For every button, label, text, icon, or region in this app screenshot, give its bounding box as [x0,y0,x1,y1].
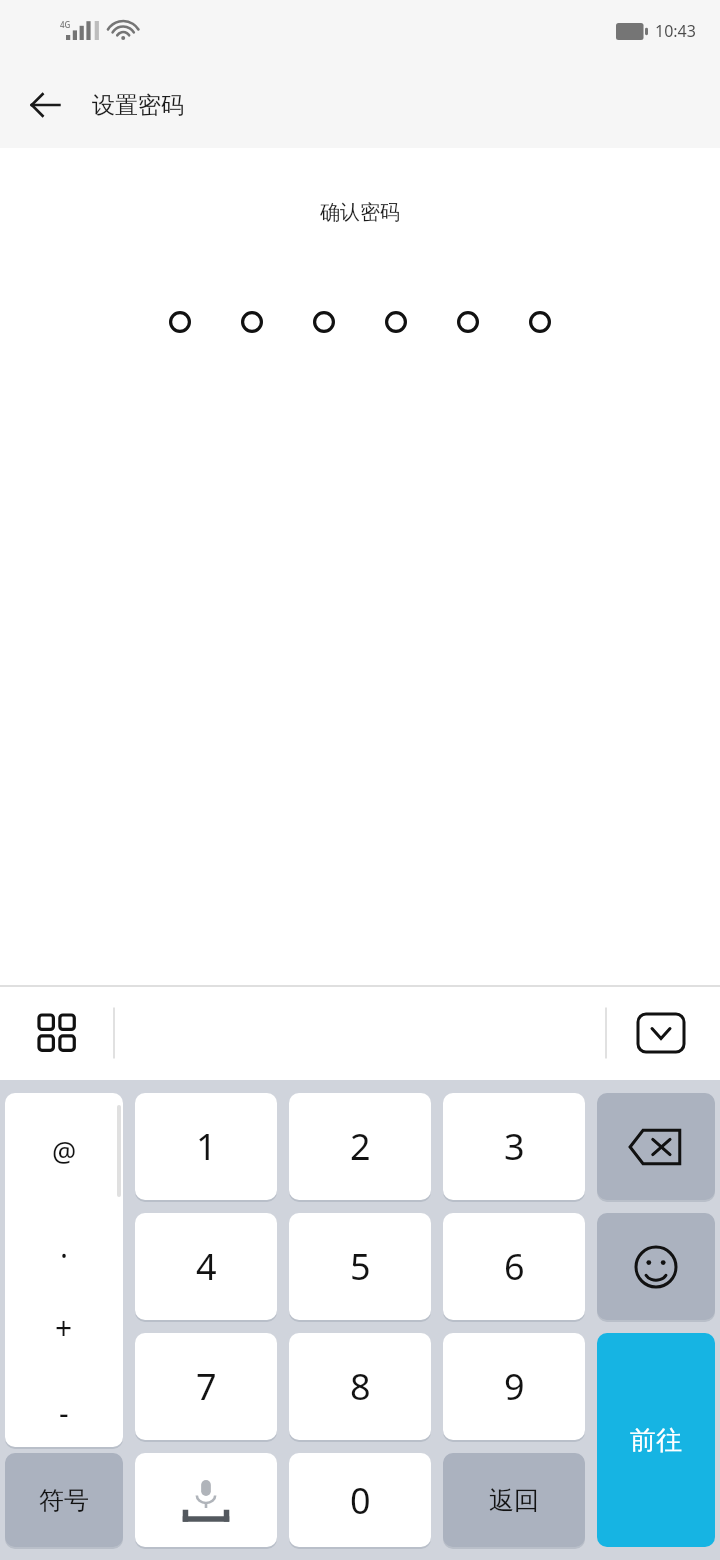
button[interactable] [597,1093,715,1200]
button[interactable]: 键盘布局 [20,996,94,1070]
staticText: 7 [196,1362,217,1411]
staticText: 返回 [489,1485,539,1516]
staticText: 前往 [630,1424,682,1457]
button[interactable] [597,1213,715,1320]
staticText: 5 [350,1242,371,1291]
button[interactable]: 1 [135,1093,277,1200]
staticText: 符号 [39,1485,89,1516]
button[interactable]: 4 [135,1213,277,1320]
staticText: 10:43 [655,20,696,42]
staticText: + [55,1307,73,1348]
button[interactable]: 5 [289,1213,431,1320]
other: 表情 [597,1213,715,1320]
button[interactable]: 收起键盘 [624,996,698,1070]
staticText: 6 [504,1242,525,1291]
button[interactable]: 7 [135,1333,277,1440]
button[interactable]: 8 [289,1333,431,1440]
button[interactable]: 符号 [5,1453,123,1547]
staticText: 1 [196,1122,217,1171]
button[interactable]: 前往 [597,1333,715,1547]
staticText: 4 [196,1242,217,1291]
button[interactable]: 返回 [14,74,76,136]
button[interactable]: · [5,1223,123,1287]
button[interactable] [135,1453,277,1547]
staticText: 8 [350,1362,371,1411]
staticText: @ [52,1133,77,1170]
staticText: 4G [60,19,71,30]
other: 语音输入 [135,1453,277,1547]
button[interactable]: 9 [443,1333,585,1440]
button[interactable]: - [5,1380,123,1444]
button[interactable]: + [5,1295,123,1359]
button[interactable]: @ [5,1119,123,1183]
staticText: 0 [350,1476,371,1525]
button[interactable]: 2 [289,1093,431,1200]
staticText: 9 [504,1362,525,1411]
staticText: 3 [504,1122,525,1171]
staticText: - [59,1392,69,1433]
other: 删除 [597,1093,715,1200]
staticText: 确认密码 [0,200,720,225]
button[interactable]: 返回 [443,1453,585,1547]
button[interactable]: 0 [289,1453,431,1547]
staticText: 2 [350,1122,371,1171]
staticText: · [60,1235,69,1276]
staticText: 设置密码 [92,91,184,120]
button[interactable]: 6 [443,1213,585,1320]
button[interactable]: 3 [443,1093,585,1200]
